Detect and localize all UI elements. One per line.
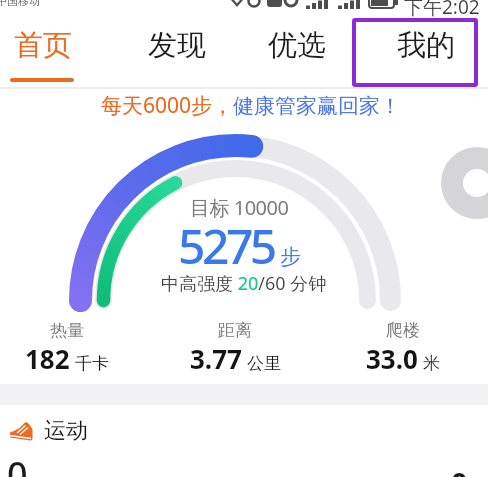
staticText: 5275 bbox=[178, 213, 274, 278]
staticText: 距离 bbox=[218, 320, 252, 341]
button[interactable]: 我的 bbox=[397, 27, 455, 64]
staticText: 33.0 bbox=[366, 341, 418, 376]
staticText: 优选 bbox=[268, 27, 326, 64]
staticText: 爬楼 bbox=[386, 320, 420, 341]
staticText: 3.77 bbox=[190, 341, 242, 376]
staticText: 182 bbox=[25, 341, 70, 376]
staticText: 每天6000步，健康管家赢回家！ bbox=[101, 91, 402, 117]
button[interactable] bbox=[338, 318, 468, 372]
button[interactable]: 首页 bbox=[14, 27, 72, 64]
staticText: 步 bbox=[280, 244, 301, 270]
staticText: 下午2:02 bbox=[404, 0, 480, 20]
staticText: 我的 bbox=[397, 27, 455, 64]
button[interactable]: 优选 bbox=[268, 27, 326, 64]
staticText: 运动 bbox=[44, 417, 88, 445]
staticText: 发现 bbox=[148, 27, 206, 64]
button[interactable] bbox=[2, 318, 132, 372]
button[interactable] bbox=[0, 89, 446, 384]
button[interactable]: 发现 bbox=[148, 27, 206, 64]
staticText: 公里 bbox=[247, 353, 281, 374]
button[interactable]: 运动 bbox=[9, 417, 88, 445]
button[interactable] bbox=[170, 318, 300, 372]
staticText: 0 bbox=[7, 450, 28, 477]
staticText: 首页 bbox=[14, 27, 72, 64]
staticText: 千卡 bbox=[75, 353, 109, 374]
staticText: 目标 10000 bbox=[190, 194, 289, 221]
button[interactable]: 每天6000步，健康管家赢回家！ bbox=[7, 91, 488, 117]
staticText: 中国移动 bbox=[0, 0, 40, 8]
staticText: 米 bbox=[423, 353, 440, 374]
staticText: 热量 bbox=[50, 320, 84, 341]
staticText: 0 bbox=[451, 463, 468, 477]
staticText: 中高强度 20/60 分钟 bbox=[161, 271, 327, 296]
